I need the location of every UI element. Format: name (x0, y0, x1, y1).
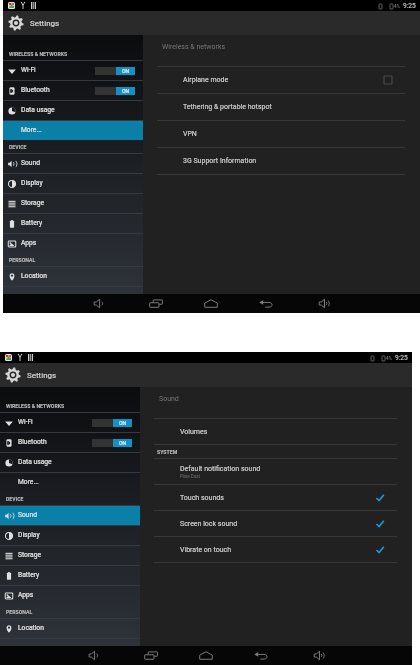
staticText: More... (21, 126, 42, 134)
staticText: 9:25 (403, 2, 416, 10)
staticText: Settings (27, 371, 57, 380)
staticText: ON (122, 88, 130, 94)
button[interactable]: Location (3, 267, 143, 286)
staticText: WIRELESS & NETWORKS (6, 403, 65, 409)
staticText: Screen lock sound (180, 520, 238, 528)
button[interactable]: Back (259, 294, 273, 313)
staticText: Sound (21, 159, 40, 167)
staticText: Storage (21, 199, 44, 207)
staticText: Data usage (21, 106, 55, 114)
staticText: Touch sounds (180, 494, 224, 502)
button[interactable]: Storage (0, 546, 140, 565)
button[interactable]: Default notification sound (140, 459, 412, 484)
button[interactable]: Battery (3, 214, 143, 233)
staticText: SYSTEM (157, 449, 178, 455)
button[interactable]: Display (3, 174, 143, 193)
staticText: Location (21, 272, 47, 280)
staticText: 4% (394, 4, 400, 9)
staticText: Default notification sound (180, 465, 261, 473)
button[interactable]: Tethering & portable hotspot (143, 94, 420, 120)
button[interactable]: Airplane mode (143, 67, 420, 93)
button[interactable]: More... (3, 121, 143, 140)
button[interactable]: Wi-Fi (3, 61, 143, 80)
staticText: WIRELESS & NETWORKS (9, 51, 68, 57)
staticText: 4% (386, 356, 392, 361)
button[interactable]: Display (0, 526, 140, 545)
button[interactable]: Home (204, 294, 218, 313)
staticText: ON (122, 68, 130, 74)
button[interactable]: 3G Support Information (143, 148, 420, 174)
button[interactable]: Sound (3, 154, 143, 173)
button[interactable]: Apps (0, 586, 140, 605)
staticText: Apps (21, 239, 37, 247)
button[interactable]: Bluetooth (3, 81, 143, 100)
button[interactable]: Apps (3, 234, 143, 253)
button[interactable]: Recents (144, 646, 158, 665)
staticText: Data usage (18, 458, 52, 466)
button[interactable]: Data usage (3, 101, 143, 120)
button[interactable]: Screen lock sound (140, 511, 412, 536)
staticText: 9:25 (395, 354, 408, 362)
button[interactable]: Recents (149, 294, 163, 313)
staticText: DEVICE (9, 144, 27, 150)
staticText: Apps (18, 591, 34, 599)
button[interactable]: Sound (0, 506, 140, 525)
staticText: ON (119, 420, 127, 426)
button[interactable]: Touch sounds (140, 485, 412, 510)
staticText: VPN (183, 130, 197, 138)
button[interactable]: Data usage (0, 453, 140, 472)
button[interactable]: Volume up (314, 646, 324, 665)
staticText: Sound (159, 395, 179, 403)
button[interactable]: Location (0, 619, 140, 638)
staticText: Vibrate on touch (180, 546, 232, 554)
staticText: ON (119, 440, 127, 446)
staticText: Battery (21, 219, 43, 227)
button[interactable]: Volume down (94, 294, 103, 313)
staticText: 3G Support Information (183, 157, 257, 165)
staticText: Settings (30, 19, 60, 28)
button[interactable]: Volume down (89, 646, 98, 665)
button[interactable]: Storage (3, 194, 143, 213)
staticText: Bluetooth (21, 86, 50, 94)
staticText: Wi-Fi (18, 418, 33, 426)
staticText: PERSONAL (6, 609, 33, 615)
staticText: Bluetooth (18, 438, 47, 446)
staticText: Display (18, 531, 40, 539)
staticText: Wi-Fi (21, 66, 36, 74)
staticText: DEVICE (6, 496, 24, 502)
button[interactable]: Vibrate on touch (140, 537, 412, 562)
button[interactable]: Battery (0, 566, 140, 585)
staticText: Battery (18, 571, 40, 579)
staticText: PERSONAL (9, 257, 36, 263)
button[interactable]: Back (254, 646, 268, 665)
staticText: Storage (18, 551, 41, 559)
staticText: Display (21, 179, 43, 187)
button[interactable]: VPN (143, 121, 420, 147)
button[interactable]: Bluetooth (0, 433, 140, 452)
button[interactable]: Volume up (319, 294, 329, 313)
staticText: Tethering & portable hotspot (183, 103, 272, 111)
button[interactable]: Home (199, 646, 213, 665)
button[interactable]: Wi-Fi (0, 413, 140, 432)
staticText: Sound (18, 511, 37, 519)
staticText: Airplane mode (183, 76, 229, 84)
button[interactable]: Volumes (140, 419, 412, 444)
staticText: More... (18, 478, 39, 486)
staticText: Wireless & networks (162, 43, 226, 51)
staticText: Location (18, 624, 44, 632)
staticText: Volumes (180, 428, 208, 436)
staticText: Pixie Dust (180, 474, 200, 479)
button[interactable]: More... (0, 473, 140, 492)
